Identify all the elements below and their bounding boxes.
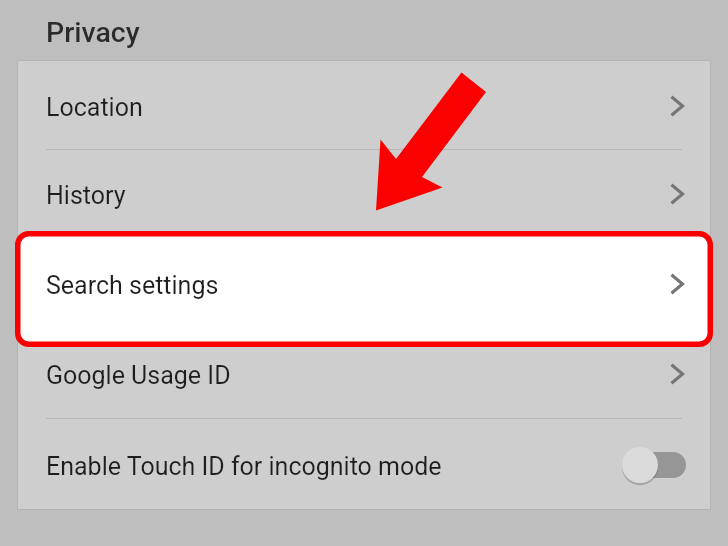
button[interactable]: Toggle Enable Touch ID for incognito mod… [619, 443, 691, 487]
other: Open History [660, 177, 694, 211]
button[interactable] [19, 234, 709, 344]
staticText: Location [46, 93, 143, 122]
button[interactable] [18, 240, 710, 329]
button[interactable] [18, 60, 710, 150]
button[interactable] [18, 329, 710, 418]
staticText: History [46, 181, 126, 210]
staticText: Search settings [46, 271, 219, 300]
button[interactable] [18, 150, 710, 240]
staticText: Privacy [46, 16, 140, 49]
staticText: Enable Touch ID for incognito mode [46, 452, 442, 481]
other: Open Location [660, 89, 694, 123]
staticText: Google Usage ID [46, 361, 231, 390]
other: Open Search settings [660, 267, 694, 301]
button[interactable] [18, 418, 710, 509]
other: Open Google Usage ID [660, 357, 694, 391]
